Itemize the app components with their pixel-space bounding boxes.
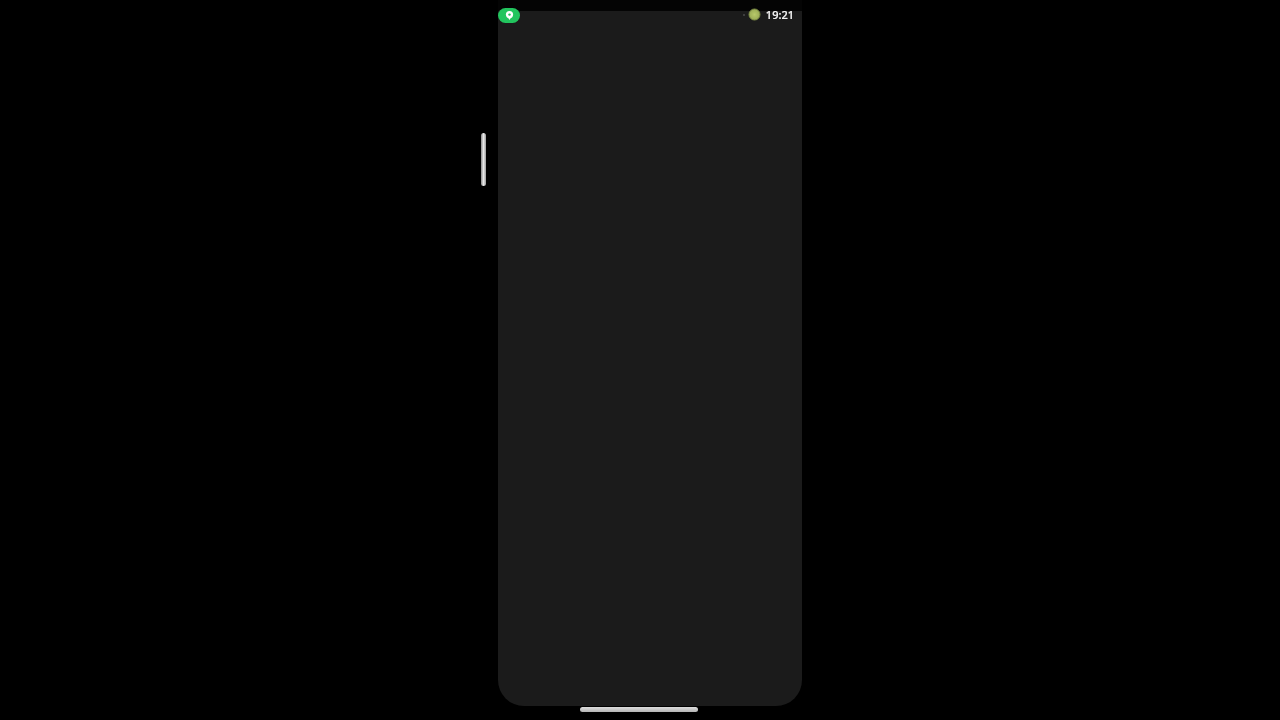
button[interactable]: Edge handle	[481, 133, 486, 186]
staticText: 19:21	[765, 7, 794, 22]
button[interactable]: Home	[580, 707, 698, 712]
button[interactable]: Location active	[498, 8, 520, 23]
button[interactable]: Status indicators	[743, 7, 794, 22]
